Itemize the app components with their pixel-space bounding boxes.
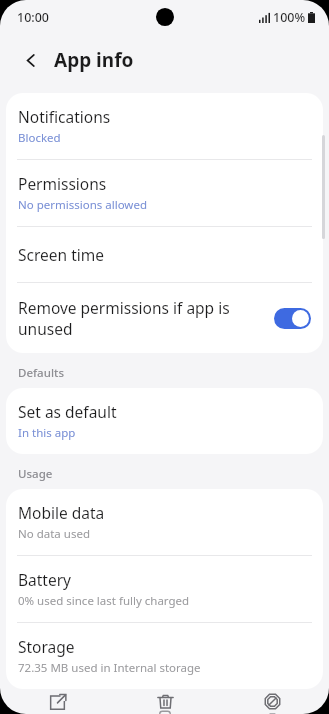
staticText: In this app: [18, 425, 76, 441]
staticText: Permissions: [18, 173, 107, 194]
staticText: 72.35 MB used in Internal storage: [18, 660, 201, 676]
button[interactable]: Set as default: [6, 388, 323, 454]
button[interactable]: Permissions: [6, 160, 323, 226]
staticText: 100%: [273, 9, 306, 26]
button[interactable]: Force stop: [222, 689, 322, 714]
staticText: Defaults: [18, 365, 64, 381]
staticText: Screen time: [18, 244, 104, 265]
button[interactable]: Back: [16, 45, 46, 75]
staticText: Set as default: [18, 401, 117, 422]
button[interactable]: Open: [7, 689, 107, 714]
staticText: 10:00: [17, 9, 50, 26]
staticText: Notifications: [18, 106, 111, 127]
button[interactable]: Notifications: [6, 93, 323, 159]
staticText: Battery: [18, 569, 72, 590]
staticText: No permissions allowed: [18, 197, 147, 213]
button[interactable]: Uninstall: [115, 689, 215, 714]
staticText: No data used: [18, 526, 90, 542]
button[interactable]: Battery: [6, 556, 323, 622]
staticText: App info: [54, 47, 134, 73]
staticText: 0% used since last fully charged: [18, 593, 190, 609]
staticText: Remove permissions if app is unused: [18, 297, 266, 339]
staticText: Usage: [18, 466, 53, 482]
button[interactable]: Storage: [6, 623, 323, 689]
button[interactable]: Screen time: [6, 227, 323, 282]
staticText: Blocked: [18, 130, 61, 146]
button[interactable]: Mobile data: [6, 489, 323, 555]
staticText: Mobile data: [18, 502, 105, 523]
staticText: Storage: [18, 636, 75, 657]
button[interactable]: Remove permissions if app is unused: [6, 283, 323, 353]
